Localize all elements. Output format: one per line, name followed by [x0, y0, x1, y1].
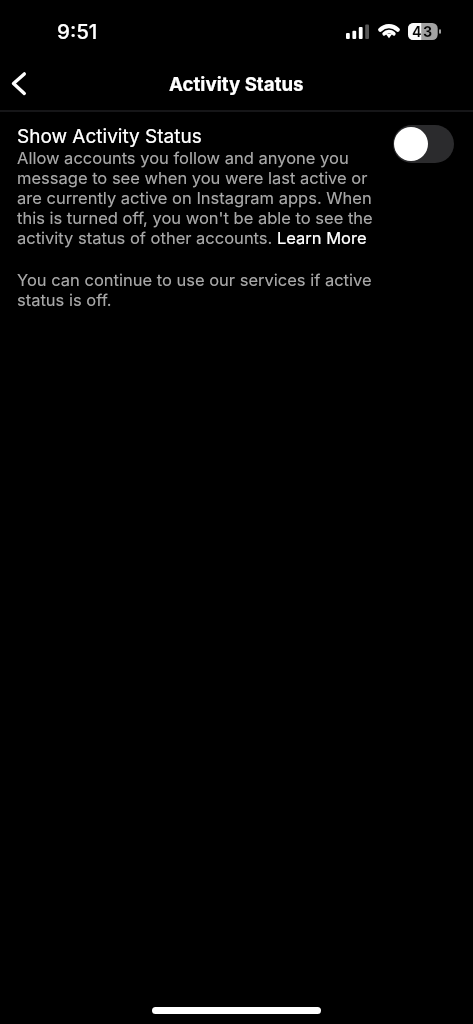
- button[interactable]: Learn More: [276, 227, 372, 249]
- staticText: Show Activity Status: [17, 125, 202, 148]
- button[interactable]: Back: [0, 55, 44, 106]
- staticText: Allow accounts you follow and anyone you…: [17, 148, 379, 248]
- button[interactable]: Show Activity Status toggle: [393, 125, 454, 163]
- staticText: 43: [412, 23, 434, 40]
- staticText: Activity Status: [169, 73, 304, 96]
- staticText: 9:51: [57, 19, 98, 44]
- staticText: You can continue to use our services if …: [17, 270, 379, 310]
